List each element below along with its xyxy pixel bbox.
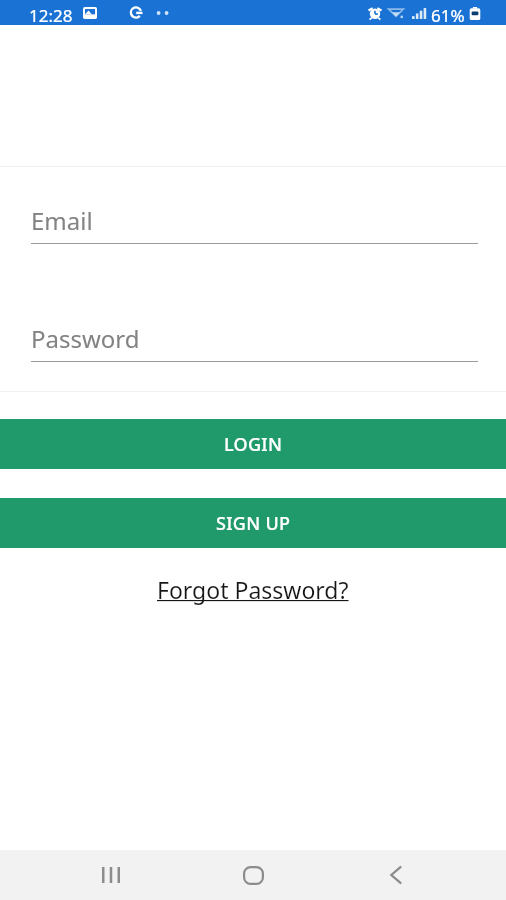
button[interactable]: Forgot Password? <box>157 574 349 605</box>
button[interactable]: SIGN UP <box>0 498 506 548</box>
staticText: Email <box>31 204 93 237</box>
button[interactable]: LOGIN <box>0 419 506 469</box>
button[interactable]: Recent apps <box>69 857 153 893</box>
button[interactable]: Back <box>353 857 437 893</box>
staticText: 61% <box>431 4 465 27</box>
staticText: Password <box>31 322 140 355</box>
staticText: 12:28 <box>29 4 73 27</box>
button[interactable]: Password <box>31 314 478 362</box>
staticText: LOGIN <box>224 432 283 457</box>
button[interactable]: Email <box>31 196 478 244</box>
staticText: SIGN UP <box>216 511 291 536</box>
button[interactable]: Home <box>211 857 295 893</box>
